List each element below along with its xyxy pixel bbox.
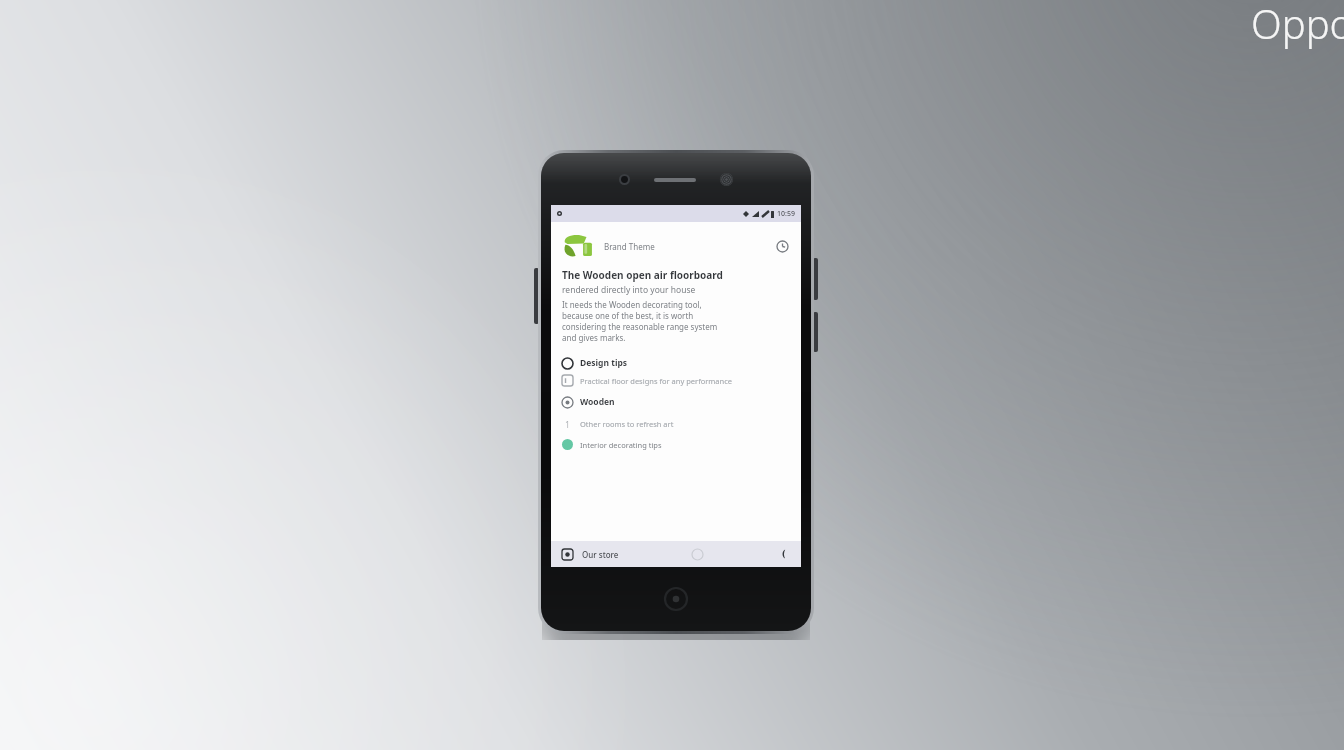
other: Home (665, 588, 687, 610)
button[interactable]: Interior decorating tips (562, 439, 790, 450)
button[interactable]: Practical floor designs for any performa… (562, 375, 790, 386)
staticText: Interior decorating tips (580, 440, 662, 450)
button[interactable]: Apps (561, 548, 574, 561)
button[interactable]: Recent (774, 238, 790, 254)
button[interactable]: Wooden (562, 396, 790, 408)
button[interactable]: Night mode (777, 547, 791, 561)
staticText: Practical floor designs for any performa… (580, 376, 733, 386)
staticText: 10:59 (777, 209, 795, 219)
staticText: Wooden (580, 396, 615, 408)
button[interactable]: 1 (562, 418, 790, 429)
button[interactable]: Design tips (562, 357, 790, 369)
staticText: Other rooms to refresh art (580, 419, 674, 429)
staticText: 1 (565, 418, 571, 429)
staticText: Our store (582, 549, 619, 560)
staticText: It needs the Wooden decorating tool, bec… (562, 299, 718, 343)
staticText: The Wooden open air floorboard (562, 268, 723, 282)
staticText: Oppo (1251, 0, 1344, 50)
button[interactable]: Brand Theme (562, 234, 790, 258)
staticText: rendered directly into your house (562, 284, 696, 296)
staticText: Brand Theme (604, 241, 655, 252)
staticText: Design tips (580, 357, 628, 369)
